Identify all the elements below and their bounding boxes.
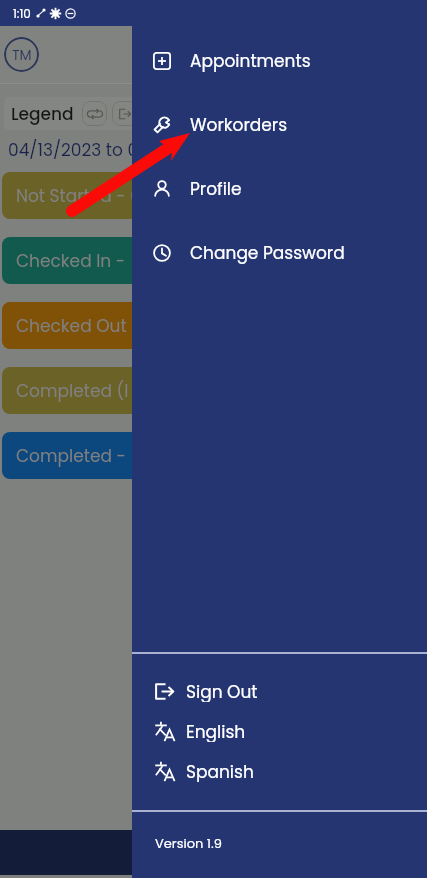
- staticText: Checked In -: [16, 249, 130, 273]
- button[interactable]: Spanish: [132, 760, 427, 782]
- staticText: Checked Out: [16, 314, 127, 338]
- staticText: Version 1.9: [155, 834, 222, 852]
- button[interactable]: Completed -: [2, 432, 427, 479]
- staticText: Change Password: [190, 241, 345, 265]
- button[interactable]: Profile: [132, 157, 427, 221]
- staticText: 04/13/2023 to 0: [8, 138, 139, 162]
- staticText: Spanish: [186, 760, 254, 782]
- staticText: English: [186, 720, 246, 742]
- button[interactable]: English: [132, 720, 427, 742]
- button[interactable]: Workorders: [132, 93, 427, 157]
- staticText: Sign Out: [186, 680, 258, 702]
- button[interactable]: Swap: [82, 101, 107, 126]
- button[interactable]: Checked In -: [2, 237, 427, 284]
- staticText: Profile: [190, 177, 242, 201]
- staticText: Not Started - 0: [16, 184, 141, 208]
- staticText: Completed (I: [16, 379, 129, 403]
- staticText: Completed -: [16, 444, 131, 468]
- button[interactable]: Not Started - 0: [2, 172, 427, 219]
- button[interactable]: Appointments: [132, 29, 427, 93]
- staticText: Legend: [11, 102, 74, 126]
- button[interactable]: Change Password: [132, 221, 427, 285]
- staticText: TM: [12, 45, 32, 65]
- staticText: Appointments: [190, 49, 311, 73]
- staticText: 1:10: [13, 5, 31, 22]
- button[interactable]: Sign out: [112, 101, 137, 126]
- button[interactable]: Completed (I: [2, 367, 427, 414]
- button[interactable]: Sign Out: [132, 680, 427, 702]
- button[interactable]: Home: [192, 831, 236, 875]
- button[interactable]: Checked Out: [2, 302, 427, 349]
- button[interactable]: TM: [4, 37, 39, 72]
- staticText: Workorders: [190, 113, 288, 137]
